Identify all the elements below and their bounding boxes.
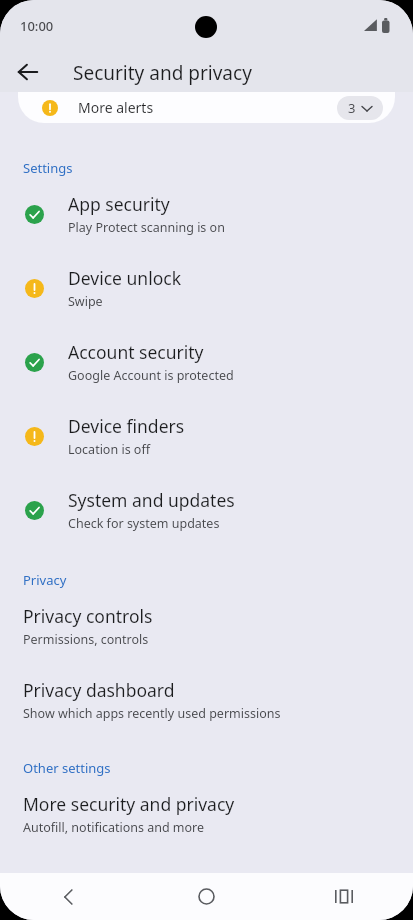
staticText: Account security xyxy=(68,340,204,364)
button[interactable]: Account security xyxy=(0,325,413,399)
staticText: Google Account is protected xyxy=(68,367,234,384)
button[interactable]: 3 xyxy=(337,96,383,120)
staticText: System and updates xyxy=(68,488,235,512)
staticText: Settings xyxy=(23,159,73,177)
staticText: Privacy xyxy=(23,571,67,589)
button[interactable]: Privacy controls xyxy=(0,589,413,663)
staticText: Permissions, controls xyxy=(23,631,149,648)
button[interactable]: Back xyxy=(8,52,48,92)
staticText: Privacy controls xyxy=(23,604,153,628)
button[interactable]: Recent apps xyxy=(275,873,413,920)
button[interactable]: Privacy dashboard xyxy=(0,663,413,737)
staticText: Device unlock xyxy=(68,266,181,290)
button[interactable]: More security and privacy xyxy=(0,777,413,851)
button[interactable]: App security xyxy=(0,177,413,251)
button[interactable]: More alerts xyxy=(18,92,395,123)
staticText: Security and privacy xyxy=(73,60,252,86)
staticText: Show which apps recently used permission… xyxy=(23,705,281,722)
button[interactable]: Device finders xyxy=(0,399,413,473)
staticText: More alerts xyxy=(78,98,154,117)
staticText: Play Protect scanning is on xyxy=(68,219,225,236)
button[interactable]: Home xyxy=(137,873,275,920)
staticText: Privacy dashboard xyxy=(23,678,175,702)
staticText: More security and privacy xyxy=(23,792,235,816)
staticText: Swipe xyxy=(68,293,103,310)
staticText: 3 xyxy=(348,99,356,117)
staticText: Check for system updates xyxy=(68,515,220,532)
button[interactable]: Device unlock xyxy=(0,251,413,325)
staticText: Autofill, notifications and more xyxy=(23,819,205,836)
staticText: 10:00 xyxy=(20,17,54,35)
button[interactable]: System and updates xyxy=(0,473,413,547)
staticText: App security xyxy=(68,192,170,216)
staticText: Location is off xyxy=(68,441,151,458)
staticText: Device finders xyxy=(68,414,185,438)
button[interactable]: Back xyxy=(0,873,137,920)
staticText: Other settings xyxy=(23,759,111,777)
